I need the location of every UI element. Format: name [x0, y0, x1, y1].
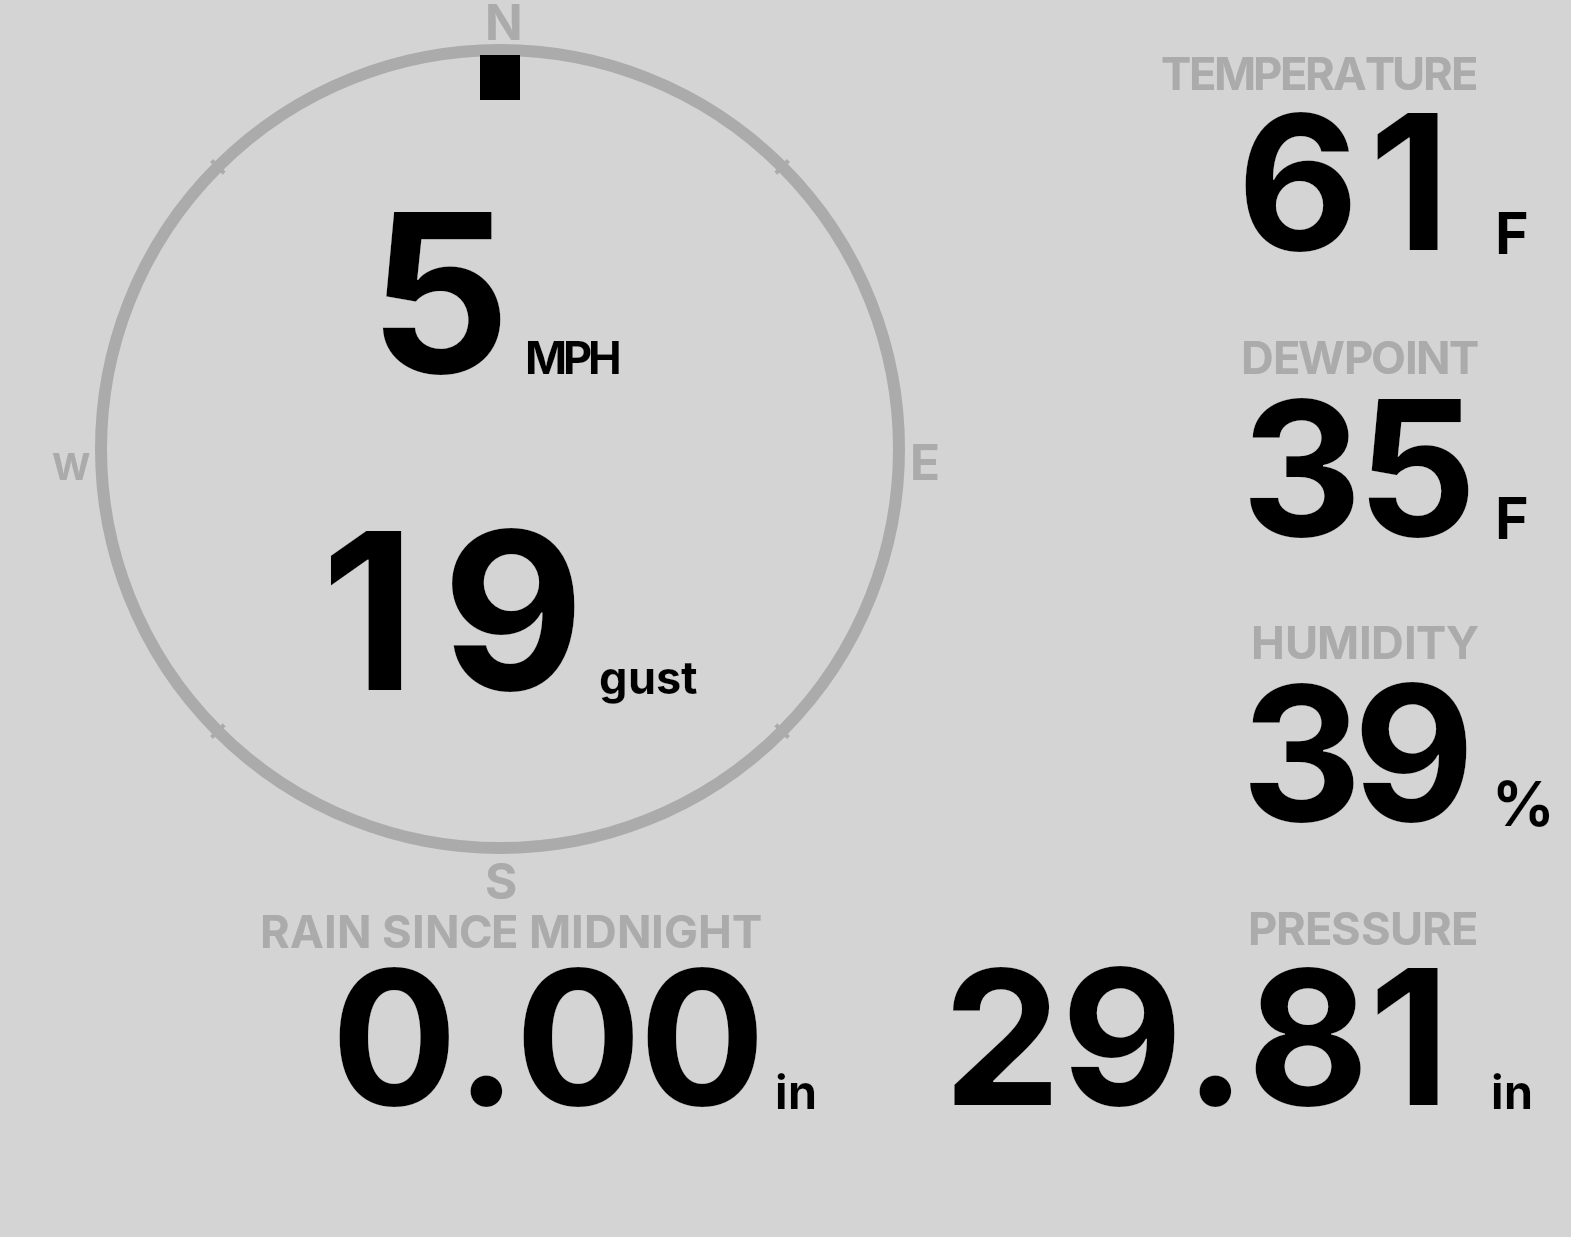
button[interactable]: TEMPERATURE 61 F [1120, 40, 1560, 270]
button[interactable]: RAIN SINCE MIDNIGHT 0.00 in [240, 900, 840, 1130]
button[interactable]: DEWPOINT 35 F [1120, 325, 1560, 555]
button[interactable]: PRESSURE 29.81 in [900, 900, 1560, 1130]
button[interactable]: HUMIDITY 39 % [1120, 610, 1560, 840]
button[interactable]: Wind direction, speed 5 MPH, gusting 19 [20, 0, 980, 910]
